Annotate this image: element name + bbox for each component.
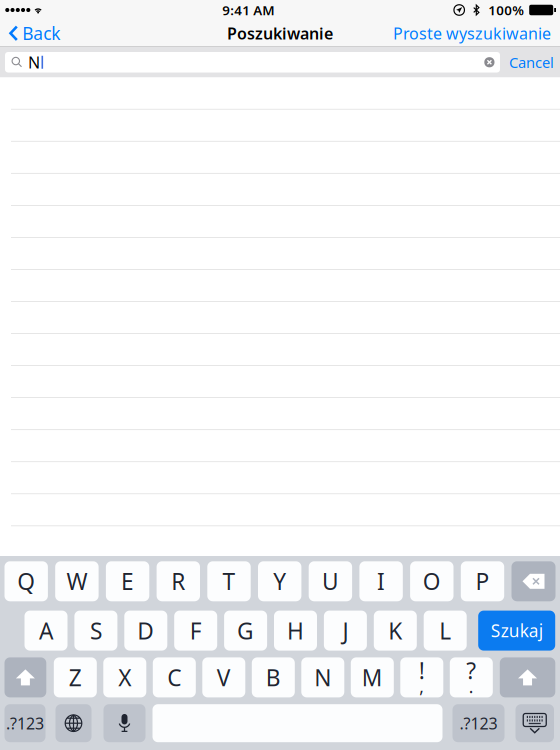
button[interactable]: Shift	[500, 657, 555, 697]
staticText: !	[419, 655, 425, 685]
button[interactable]: L	[424, 611, 467, 651]
staticText: ,	[419, 675, 424, 698]
staticText: A	[39, 615, 53, 646]
staticText: M	[362, 662, 383, 692]
staticText: P	[475, 566, 489, 596]
staticText: V	[217, 662, 231, 692]
button[interactable]: M	[351, 657, 394, 697]
staticText: Poszukiwanie	[227, 23, 333, 44]
staticText: U	[322, 566, 339, 596]
staticText: Z	[69, 662, 82, 692]
button[interactable]: R	[157, 561, 200, 601]
staticText: R	[171, 566, 185, 596]
staticText: .?123	[459, 713, 497, 734]
staticText: N	[314, 662, 331, 692]
staticText: .	[469, 675, 474, 698]
button[interactable]: W	[55, 561, 99, 601]
staticText: C	[167, 662, 181, 692]
button[interactable]: Cancel	[500, 47, 560, 77]
staticText: B	[266, 662, 281, 692]
button[interactable]: .?123	[452, 704, 504, 742]
staticText: ?	[466, 655, 476, 685]
staticText: X	[118, 662, 131, 692]
button[interactable]: .?123	[4, 704, 45, 742]
button[interactable]: Shift	[4, 657, 46, 697]
button[interactable]: J	[324, 611, 367, 651]
staticText: 100%	[488, 1, 524, 19]
button[interactable]: Z	[54, 657, 97, 697]
button[interactable]: C	[153, 657, 196, 697]
staticText: Cancel	[509, 52, 554, 72]
button[interactable]: D	[124, 611, 167, 651]
staticText: O	[423, 566, 441, 596]
staticText: Q	[17, 566, 35, 596]
button[interactable]: !	[400, 657, 443, 697]
staticText: F	[190, 615, 202, 646]
button[interactable]: Back	[0, 20, 68, 46]
staticText: H	[287, 615, 304, 646]
staticText: L	[439, 615, 451, 646]
button[interactable]: A	[24, 611, 67, 651]
staticText: S	[90, 615, 102, 646]
button[interactable]: I	[359, 561, 403, 601]
button[interactable]: E	[106, 561, 149, 601]
button[interactable]: X	[103, 657, 146, 697]
button[interactable]: N	[301, 657, 344, 697]
button[interactable]: F	[174, 611, 217, 651]
staticText: G	[237, 615, 254, 646]
staticText: Back	[22, 22, 60, 45]
button[interactable]: Q	[4, 561, 48, 601]
button[interactable]: H	[274, 611, 317, 651]
button[interactable]: P	[461, 561, 504, 601]
button[interactable]: B	[252, 657, 295, 697]
staticText: .?123	[6, 713, 44, 734]
button[interactable]: K	[374, 611, 417, 651]
staticText: E	[121, 566, 134, 596]
button[interactable]: T	[207, 561, 251, 601]
staticText: 9:41 AM	[222, 1, 274, 19]
staticText: J	[342, 615, 348, 646]
button[interactable]: Hide keyboard	[515, 704, 554, 742]
staticText: N	[28, 52, 40, 73]
button[interactable]: Proste wyszukiwanie	[384, 20, 560, 46]
staticText: Y	[273, 566, 286, 596]
staticText: W	[66, 566, 87, 596]
staticText: Szukaj	[491, 619, 543, 642]
button[interactable]: V	[202, 657, 245, 697]
button[interactable]: O	[410, 561, 453, 601]
button[interactable]: Dictation	[103, 704, 145, 742]
staticText: T	[222, 566, 235, 596]
button[interactable]: Szukaj	[478, 611, 555, 651]
button[interactable]: Next keyboard	[55, 704, 91, 742]
button[interactable]: Delete	[511, 561, 555, 601]
staticText: D	[137, 615, 154, 646]
button[interactable]: G	[224, 611, 267, 651]
button[interactable]: S	[74, 611, 117, 651]
staticText: Proste wyszukiwanie	[393, 23, 551, 44]
button[interactable]: ?	[450, 657, 493, 697]
staticText: K	[388, 615, 402, 646]
button[interactable]: Y	[258, 561, 301, 601]
staticText: I	[377, 566, 385, 596]
button[interactable]: U	[309, 561, 352, 601]
